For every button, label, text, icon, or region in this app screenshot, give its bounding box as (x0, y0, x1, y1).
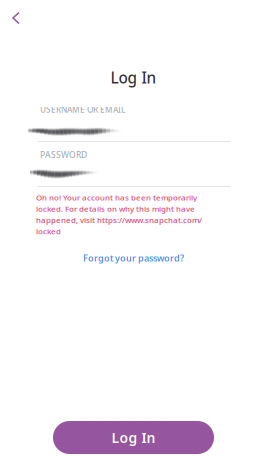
staticText: USERNAME OR EMAIL (40, 104, 125, 115)
staticText: Log In (110, 67, 156, 88)
button[interactable]: Forgot your password? (0, 251, 267, 265)
staticText: Forgot your password? (83, 252, 184, 264)
button[interactable]: Log In (53, 421, 214, 454)
button[interactable]: Back (12, 3, 46, 33)
staticText: PASSWORD (40, 149, 87, 161)
staticText: Log In (111, 428, 155, 447)
staticText: Oh no! Your account has been temporarily… (36, 192, 202, 237)
